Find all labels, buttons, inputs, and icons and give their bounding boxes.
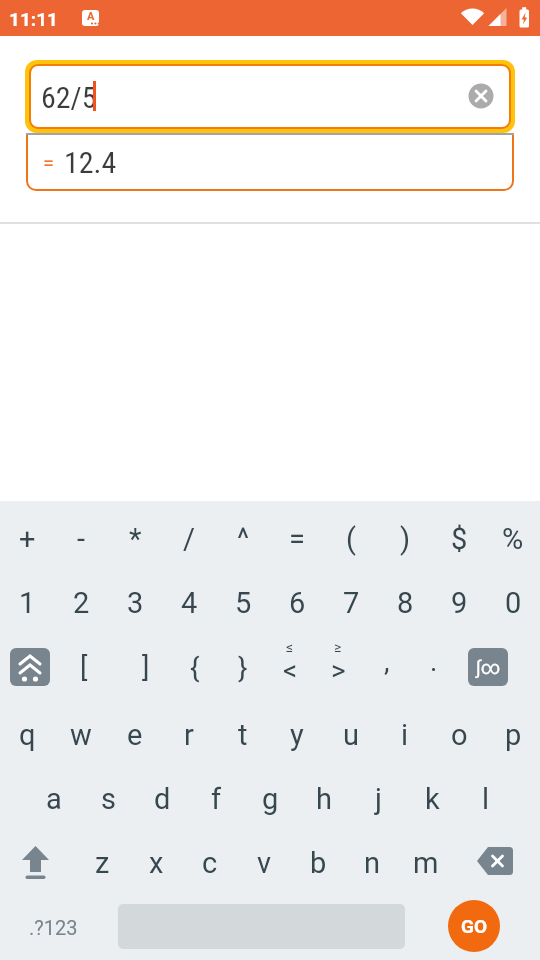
button[interactable]: c: [183, 832, 237, 894]
staticText: +: [19, 522, 36, 556]
staticText: =: [43, 151, 54, 174]
button[interactable]: GO: [448, 900, 500, 952]
button[interactable]: u: [324, 704, 378, 766]
button[interactable]: (: [324, 508, 378, 570]
button[interactable]: l: [459, 768, 513, 830]
staticText: -: [77, 522, 86, 556]
button[interactable]: ≥: [323, 639, 353, 655]
button[interactable]: >: [316, 639, 360, 701]
button[interactable]: ]: [124, 636, 168, 698]
button[interactable]: s: [81, 768, 135, 830]
staticText: A: [87, 10, 95, 23]
staticText: t: [238, 718, 248, 752]
button[interactable]: }: [221, 636, 265, 698]
button[interactable]: 0: [486, 572, 540, 634]
button[interactable]: b: [291, 832, 345, 894]
staticText: n: [364, 846, 381, 880]
button[interactable]: z: [75, 832, 129, 894]
staticText: /: [183, 522, 195, 556]
staticText: s: [101, 782, 116, 816]
button[interactable]: v: [237, 832, 291, 894]
staticText: c: [202, 846, 218, 880]
button[interactable]: =: [270, 508, 324, 570]
button[interactable]: a: [27, 768, 81, 830]
button[interactable]: p: [486, 704, 540, 766]
button[interactable]: 9: [432, 572, 486, 634]
button[interactable]: g: [243, 768, 297, 830]
staticText: b: [310, 846, 327, 880]
staticText: y: [290, 718, 304, 752]
button[interactable]: $: [432, 508, 486, 570]
button[interactable]: %: [486, 508, 540, 570]
button[interactable]: j: [351, 768, 405, 830]
staticText: 0: [505, 586, 522, 620]
button[interactable]: d: [135, 768, 189, 830]
button[interactable]: o: [432, 704, 486, 766]
staticText: 11:11: [9, 8, 58, 30]
button[interactable]: m: [399, 832, 453, 894]
button[interactable]: 8: [378, 572, 432, 634]
button[interactable]: w: [54, 704, 108, 766]
button[interactable]: n: [345, 832, 399, 894]
button[interactable]: 3: [108, 572, 162, 634]
button[interactable]: 5: [216, 572, 270, 634]
button[interactable]: .?123: [13, 902, 93, 952]
button[interactable]: {: [173, 636, 217, 698]
staticText: e: [127, 718, 143, 752]
staticText: 2: [73, 586, 90, 620]
button[interactable]: 7: [324, 572, 378, 634]
staticText: x: [149, 846, 164, 880]
staticText: 6: [289, 586, 306, 620]
button[interactable]: ≤: [275, 639, 305, 655]
staticText: 8: [397, 586, 414, 620]
button[interactable]: 1: [0, 572, 54, 634]
staticText: $: [451, 522, 468, 556]
staticText: d: [154, 782, 171, 816]
staticText: 9: [451, 586, 468, 620]
staticText: w: [70, 718, 92, 752]
button[interactable]: [25, 60, 515, 133]
button[interactable]: [468, 83, 494, 109]
button[interactable]: y: [270, 704, 324, 766]
button[interactable]: e: [108, 704, 162, 766]
button[interactable]: ): [378, 508, 432, 570]
staticText: >: [331, 654, 346, 687]
button[interactable]: =: [26, 133, 514, 191]
staticText: }: [238, 651, 248, 684]
button[interactable]: ^: [216, 508, 270, 570]
button[interactable]: i: [378, 704, 432, 766]
button[interactable]: [473, 843, 517, 881]
button[interactable]: <: [268, 639, 312, 701]
button[interactable]: k: [405, 768, 459, 830]
button[interactable]: 6: [270, 572, 324, 634]
staticText: q: [19, 718, 36, 752]
staticText: z: [95, 846, 110, 880]
staticText: v: [257, 846, 272, 880]
button[interactable]: .: [414, 630, 454, 692]
button[interactable]: r: [162, 704, 216, 766]
button[interactable]: ∫∞: [468, 648, 508, 686]
button[interactable]: ,: [367, 630, 407, 692]
button[interactable]: 2: [54, 572, 108, 634]
staticText: l: [482, 782, 490, 816]
button[interactable]: [: [62, 636, 106, 698]
button[interactable]: f: [189, 768, 243, 830]
button[interactable]: q: [0, 704, 54, 766]
button[interactable]: +: [0, 508, 54, 570]
button[interactable]: h: [297, 768, 351, 830]
staticText: .: [430, 645, 438, 678]
button[interactable]: *: [108, 508, 162, 570]
button[interactable]: -: [54, 508, 108, 570]
button[interactable]: [14, 840, 58, 884]
staticText: =: [289, 522, 305, 556]
staticText: g: [262, 782, 279, 816]
button[interactable]: /: [162, 508, 216, 570]
staticText: ≥: [334, 639, 342, 655]
staticText: p: [505, 718, 522, 752]
button[interactable]: [10, 648, 50, 686]
staticText: <: [283, 654, 298, 687]
button[interactable]: t: [216, 704, 270, 766]
button[interactable]: x: [129, 832, 183, 894]
button[interactable]: 4: [162, 572, 216, 634]
